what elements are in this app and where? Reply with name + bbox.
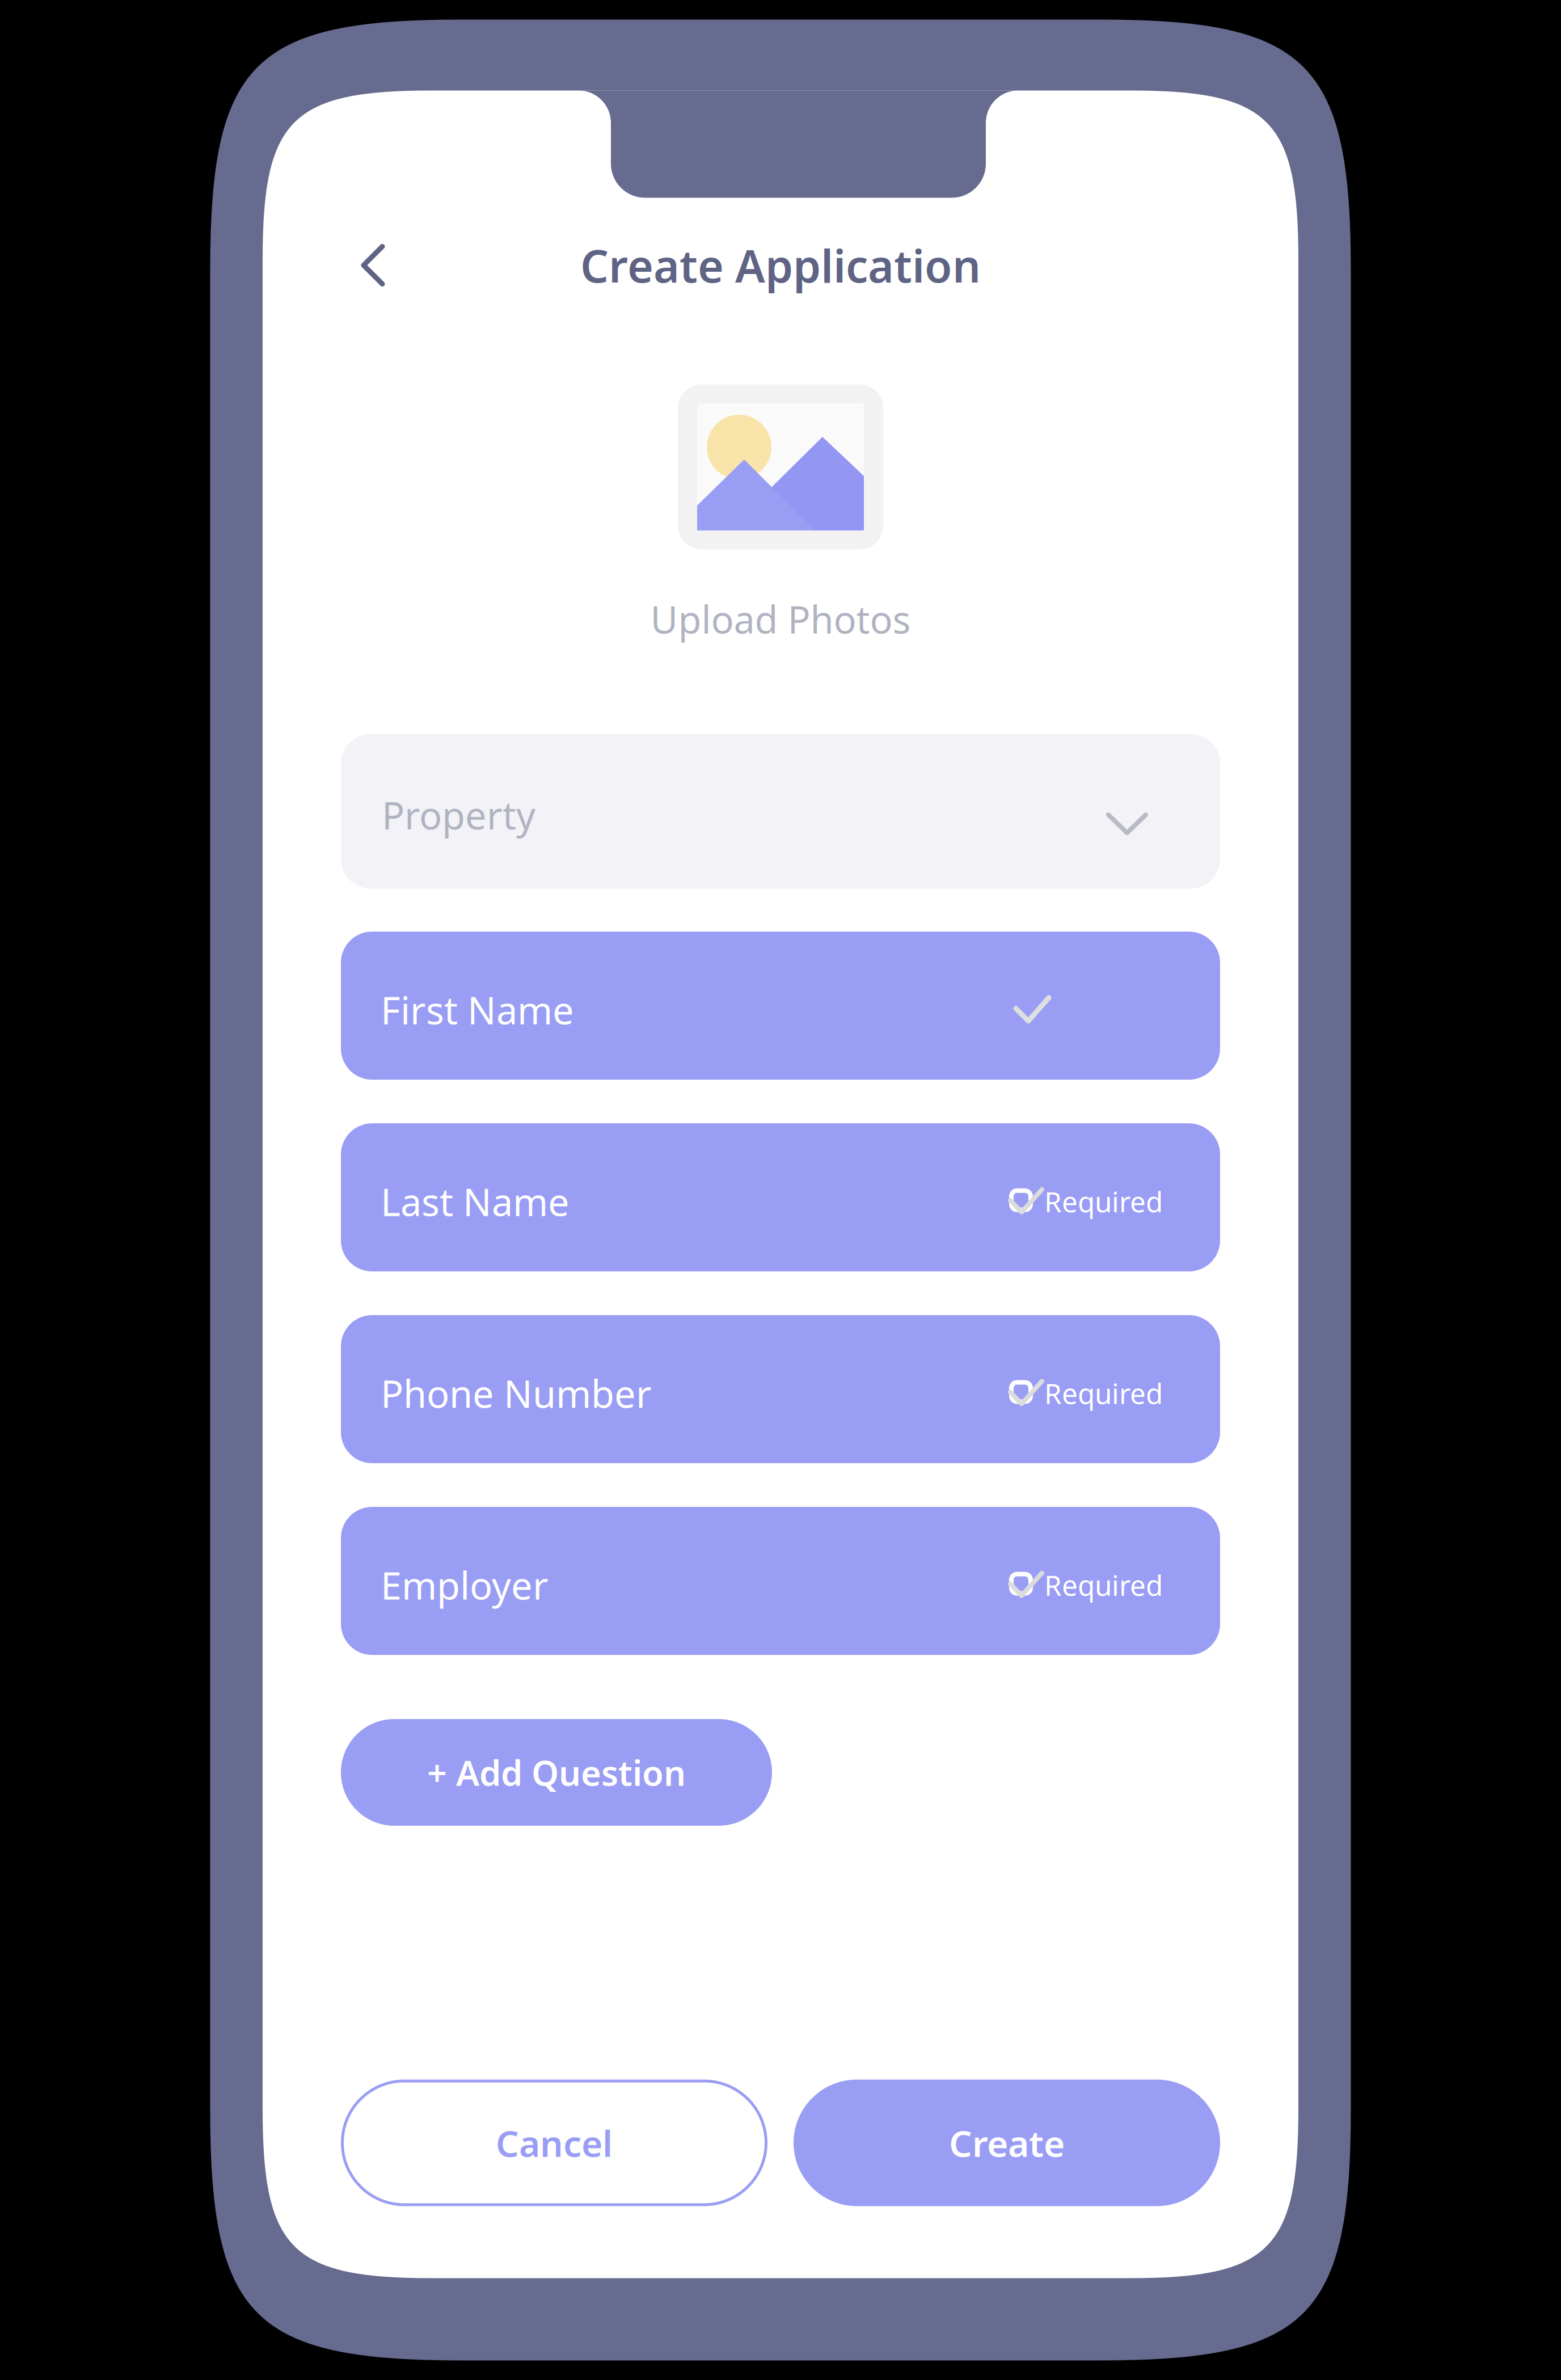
button[interactable]: Property — [341, 734, 1220, 888]
button[interactable]: Cancel — [341, 2080, 767, 2206]
staticText: + Add Question — [427, 1749, 686, 1795]
staticText: Employer — [381, 1560, 549, 1610]
button[interactable]: + Add Question — [341, 1719, 772, 1826]
staticText: Cancel — [496, 2119, 613, 2167]
button[interactable]: Upload Photos — [678, 384, 883, 549]
button[interactable]: Employer — [341, 1507, 1220, 1655]
staticText: Last Name — [381, 1176, 569, 1226]
staticText: Property — [382, 790, 535, 840]
staticText: Upload Photos — [650, 594, 911, 644]
staticText: First Name — [381, 985, 574, 1035]
button[interactable]: Back — [342, 234, 404, 296]
button[interactable]: Create — [794, 2080, 1220, 2206]
staticText: Create — [949, 2119, 1065, 2167]
button[interactable]: Phone Number — [341, 1315, 1220, 1463]
staticText: Create Application — [580, 236, 981, 295]
staticText: Phone Number — [381, 1368, 652, 1418]
staticText: Required — [1044, 1375, 1163, 1412]
button[interactable]: Last Name — [341, 1123, 1220, 1271]
staticText: Required — [1044, 1566, 1163, 1603]
button[interactable]: First Name — [341, 932, 1220, 1080]
staticText: Required — [1044, 1183, 1163, 1220]
